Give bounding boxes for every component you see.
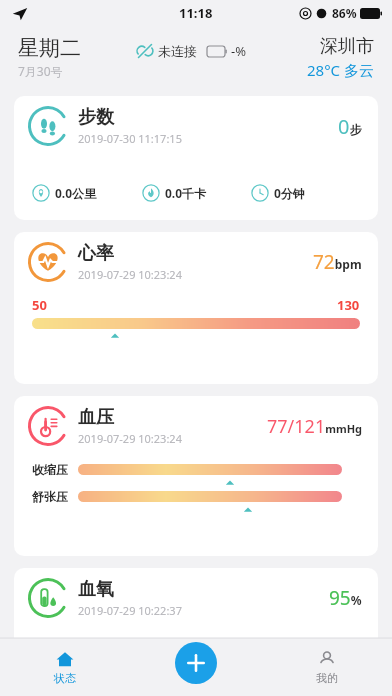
staticText: 28°C 多云	[307, 60, 374, 80]
button[interactable]: Add	[175, 642, 217, 684]
staticText: 11:18	[179, 4, 213, 22]
staticText: 72bpm	[313, 249, 362, 275]
staticText: 2019-07-29 10:23:24	[78, 431, 182, 446]
button[interactable]: 步数	[14, 96, 378, 220]
staticText: 50	[32, 296, 47, 314]
staticText: 舒张压	[32, 489, 68, 504]
staticText: -%	[231, 42, 246, 60]
staticText: 心率	[78, 242, 114, 265]
staticText: 0.0公里	[55, 185, 97, 201]
staticText: 2019-07-30 11:17:15	[78, 131, 182, 146]
staticText: 0.0千卡	[165, 185, 207, 201]
button[interactable]: 血压	[14, 396, 378, 556]
staticText: 血压	[78, 406, 114, 429]
staticText: 步数	[78, 106, 114, 129]
staticText: 0步	[338, 113, 362, 140]
staticText: 2019-07-29 10:23:24	[78, 267, 182, 282]
staticText: 7月30号	[18, 63, 63, 79]
staticText: 我的	[316, 671, 338, 685]
staticText: 2019-07-29 10:22:37	[78, 603, 182, 618]
button[interactable]: 状态	[0, 638, 130, 696]
other: Disconnected	[136, 42, 154, 60]
staticText: 95%	[329, 585, 362, 611]
button[interactable]: 我的	[261, 638, 392, 696]
staticText: 未连接	[158, 43, 197, 59]
button[interactable]: 血氧	[14, 568, 378, 688]
staticText: 血氧	[78, 578, 114, 601]
staticText: 星期二	[18, 35, 81, 61]
staticText: 130	[337, 296, 360, 314]
staticText: 77/121mmHg	[267, 414, 362, 439]
button[interactable]: 心率	[14, 232, 378, 384]
staticText: 收缩压	[32, 462, 68, 477]
staticText: 深圳市	[320, 35, 374, 58]
staticText: 0分钟	[274, 185, 305, 201]
staticText: 状态	[54, 671, 76, 685]
staticText: 86%	[332, 5, 357, 21]
